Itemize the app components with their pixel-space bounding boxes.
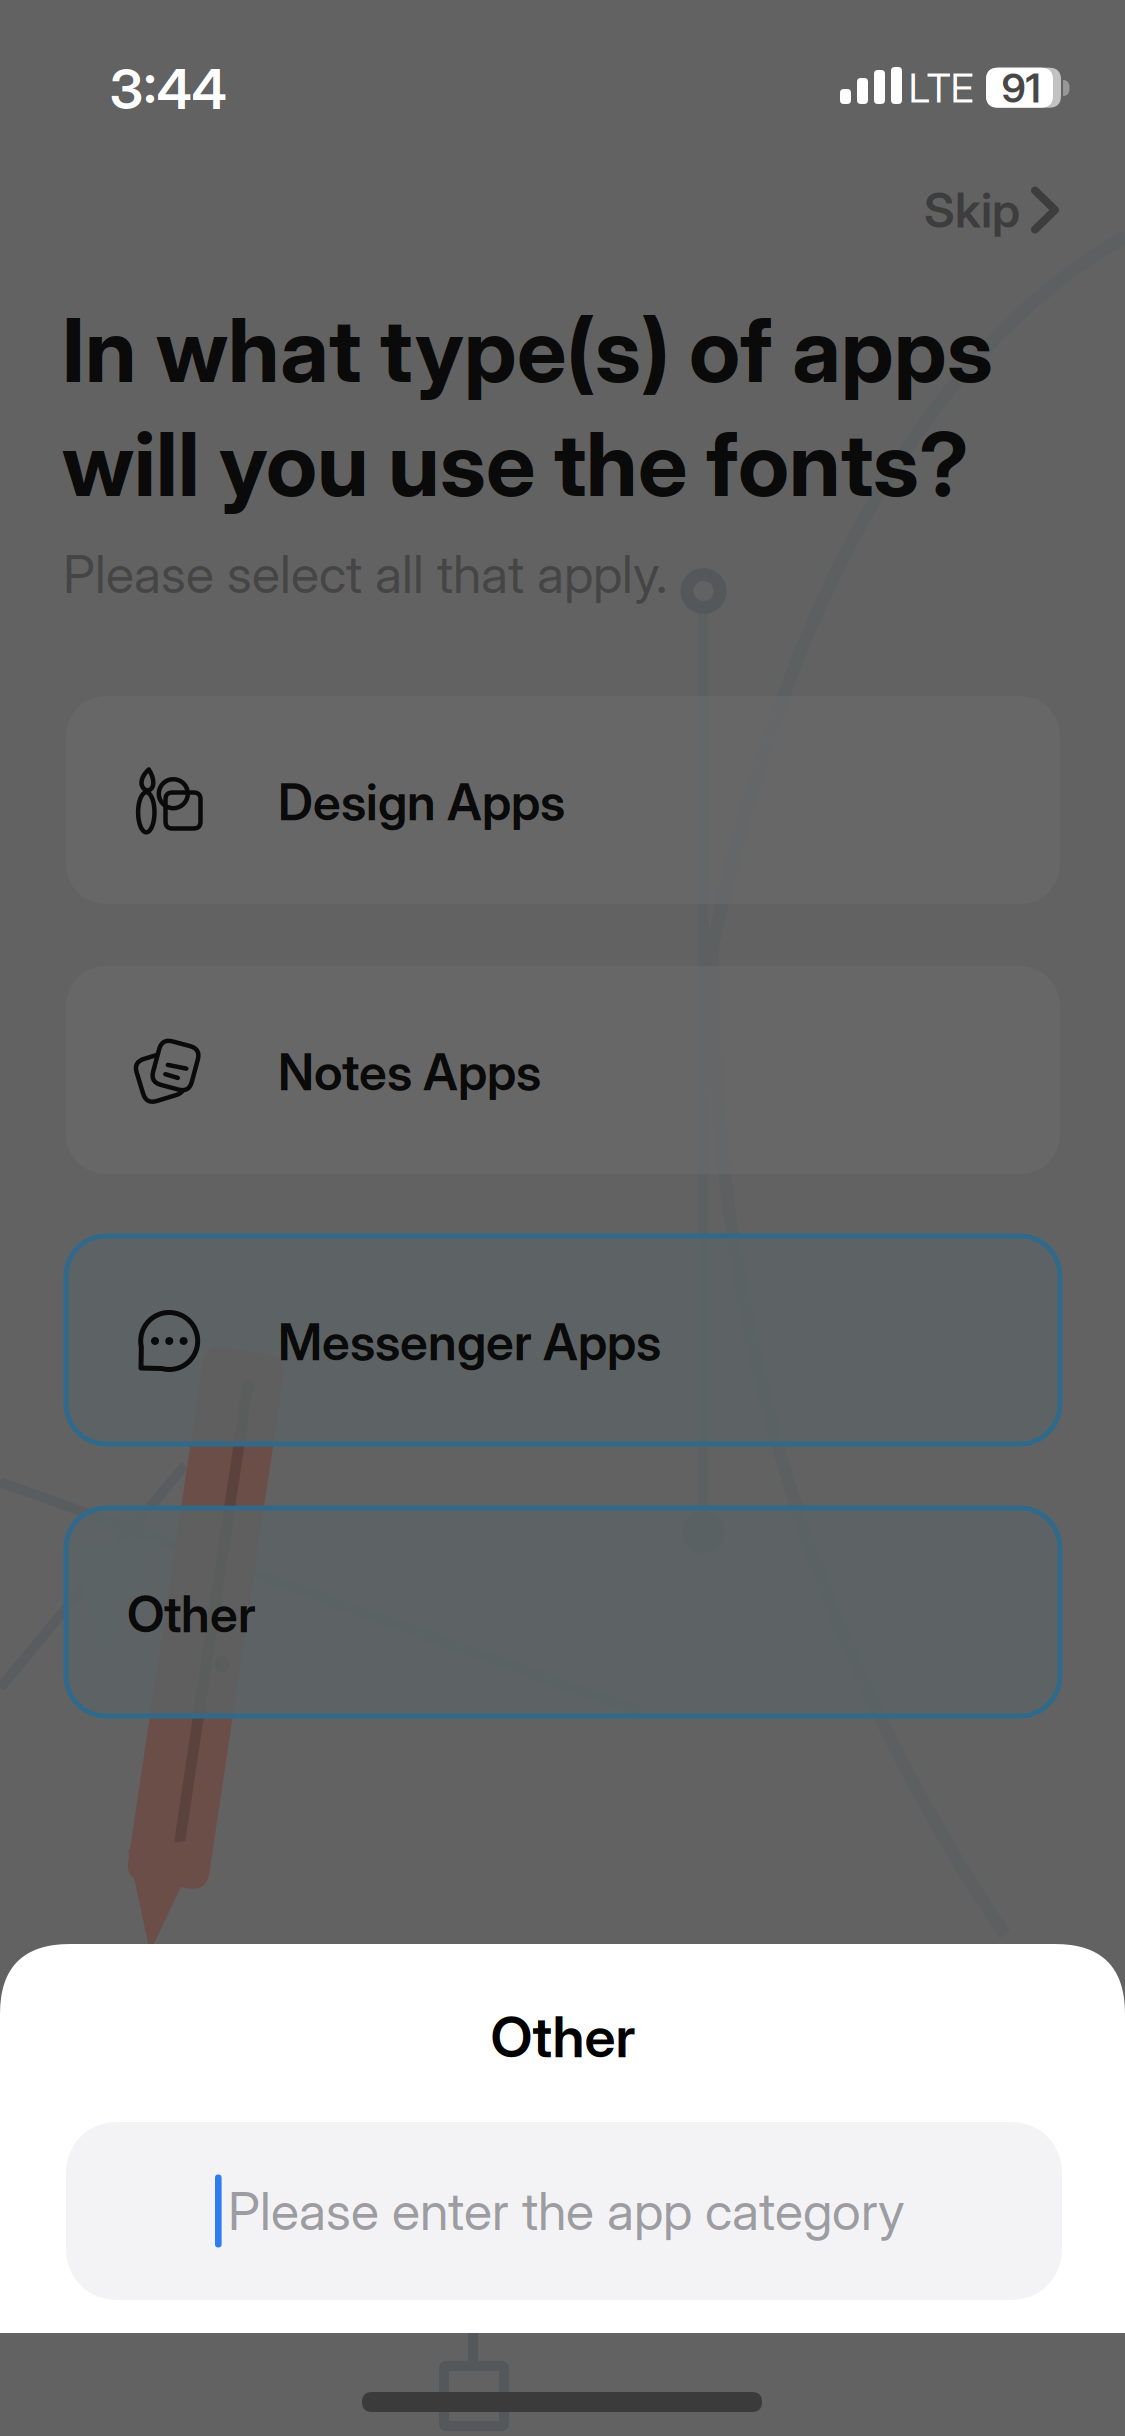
staticText: Messenger Apps xyxy=(278,1312,661,1372)
button[interactable]: Notes Apps xyxy=(66,966,1060,1174)
button[interactable]: Skip xyxy=(924,181,1058,239)
button[interactable]: Design Apps xyxy=(66,696,1060,904)
button[interactable]: Other xyxy=(66,1508,1060,1716)
staticText: will you use the fonts? xyxy=(62,411,969,517)
staticText: 3:44 xyxy=(109,56,226,122)
staticText: Please select all that apply. xyxy=(63,542,667,605)
staticText: Please enter the app category xyxy=(228,2179,905,2242)
staticText: LTE xyxy=(908,64,973,112)
staticText: Design Apps xyxy=(278,772,565,832)
staticText: Other xyxy=(127,1584,256,1644)
staticText: Other xyxy=(490,2003,635,2071)
staticText: Skip xyxy=(924,181,1020,239)
staticText: 91 xyxy=(1001,64,1040,112)
staticText: In what type(s) of apps xyxy=(62,297,993,403)
button[interactable]: Please enter the app category xyxy=(66,2122,1062,2300)
button[interactable]: Messenger Apps xyxy=(66,1236,1060,1444)
staticText: Notes Apps xyxy=(278,1042,541,1102)
